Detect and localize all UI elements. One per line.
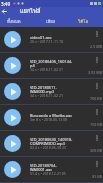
button[interactable]: VID_20180630_140918- <box>0 131 103 157</box>
button[interactable]: VID-20180511- <box>0 79 103 105</box>
staticText: 2.5 MB <box>90 44 102 49</box>
staticText: 3m 8 s • 2018-05-13 08 <box>30 117 68 122</box>
button[interactable]: เสียง <box>36 16 65 27</box>
button[interactable]: More options <box>93 160 100 167</box>
staticText: 34 s • 2018-11-02 21 <box>30 67 63 72</box>
button[interactable]: More options <box>93 134 100 141</box>
staticText: 3:49 <box>1 1 11 7</box>
staticText: ทั้งหมด <box>7 18 21 25</box>
button[interactable]: Back <box>0 7 9 16</box>
staticText: วิดีโอ <box>78 18 89 25</box>
staticText: WA0000.mp3 <box>30 89 55 94</box>
staticText: 81 KB <box>92 174 102 179</box>
staticText: Buscando a Marika.aac <box>30 113 73 118</box>
staticText: 51.4 s • 2018-12-21 05 <box>30 171 66 176</box>
staticText: VID_20180630_140918- <box>30 137 73 142</box>
button[interactable]: วิดีโอ <box>69 16 98 27</box>
staticText: VID-20180704- <box>30 163 57 168</box>
staticText: แยกไฟล์ <box>20 7 41 16</box>
staticText: 305 KB <box>90 148 102 153</box>
button[interactable]: video01.aac <box>0 27 103 53</box>
staticText: WA0001.aac <box>30 167 53 172</box>
button[interactable]: VID_20180406_160144.m <box>0 53 103 79</box>
staticText: video01.aac <box>30 35 52 40</box>
button[interactable]: Buscando a Marika.aac <box>0 105 103 131</box>
button[interactable]: More options <box>93 108 100 115</box>
staticText: 34 s • 2018-11-02 21 <box>30 93 63 98</box>
staticText: 26 s • 2017-11-11 18 <box>30 39 63 44</box>
staticText: 43.4 s • 2018-06-30 33 <box>30 145 66 150</box>
staticText: 3.92 MB <box>87 70 102 75</box>
staticText: COMPRIMIDO.mp3 <box>30 141 65 146</box>
button[interactable]: More options <box>93 30 100 37</box>
button[interactable]: ทั้งหมด <box>0 16 27 27</box>
staticText: p4 <box>30 63 35 68</box>
button[interactable]: VID-20180704- <box>0 157 103 183</box>
staticText: VID-20180511- <box>30 85 57 90</box>
staticText: VID_20180406_160144.m <box>30 59 74 64</box>
button[interactable]: More options <box>93 56 100 63</box>
staticText: 700 KB <box>90 96 102 101</box>
staticText: 102 KB <box>90 122 102 127</box>
staticText: เสียง <box>46 18 55 25</box>
button[interactable]: More options <box>93 82 100 89</box>
